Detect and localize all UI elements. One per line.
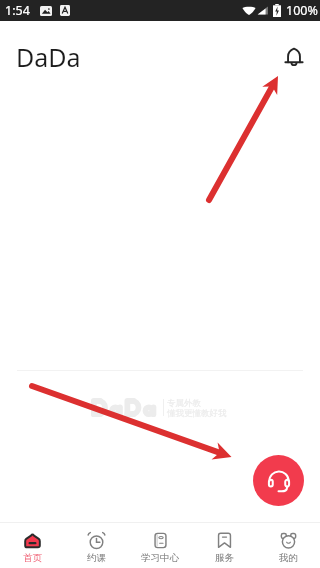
staticText: 首页 (23, 552, 42, 564)
button[interactable]: 学习中心 (128, 523, 192, 568)
button[interactable]: 首页 (0, 523, 64, 568)
staticText: DaDa (16, 40, 81, 74)
staticText: 100% (286, 2, 318, 19)
button[interactable]: Notifications (274, 37, 314, 77)
staticText: 我的 (279, 552, 298, 564)
staticText: 专属外教 懂我更懂教好我 (167, 398, 227, 419)
staticText: 约课 (87, 552, 106, 564)
button[interactable]: Customer service (253, 455, 304, 506)
staticText: 服务 (215, 552, 234, 564)
staticText: 1:54 (5, 2, 30, 19)
button[interactable]: 服务 (192, 523, 256, 568)
button[interactable]: 我的 (256, 523, 320, 568)
staticText: 学习中心 (141, 552, 179, 564)
button[interactable]: 约课 (64, 523, 128, 568)
